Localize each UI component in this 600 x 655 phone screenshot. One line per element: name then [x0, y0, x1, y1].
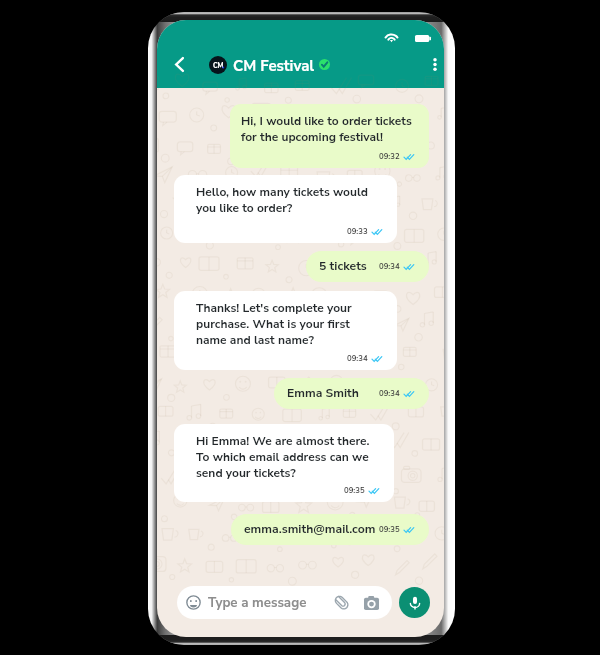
staticText: 09:33 — [347, 226, 368, 237]
button[interactable]: Contact avatar — [209, 56, 227, 74]
staticText: Emma Smith — [287, 385, 359, 402]
staticText: Type a message — [208, 594, 307, 612]
staticText: 09:35 — [379, 524, 400, 535]
staticText: CM — [213, 61, 224, 70]
staticText: CM Festival — [233, 56, 315, 76]
staticText: Hi Emma! We are almost there. To which e… — [196, 433, 370, 481]
button[interactable]: Camera — [361, 593, 381, 613]
staticText: 09:34 — [347, 353, 368, 364]
button[interactable]: 5 tickets — [306, 251, 429, 282]
staticText: 5 tickets — [319, 258, 367, 275]
button[interactable]: Hi, I would like to order tickets for th… — [230, 104, 429, 168]
button[interactable]: More options — [422, 51, 444, 77]
staticText: emma.smith@mail.com — [244, 521, 376, 538]
button[interactable]: Hi Emma! We are almost there. To which e… — [174, 424, 394, 502]
staticText: Hi, I would like to order tickets for th… — [241, 113, 412, 145]
staticText: 09:34 — [379, 261, 400, 272]
button[interactable]: Attach file — [332, 593, 352, 613]
button[interactable]: emma.smith@mail.com — [231, 514, 429, 545]
staticText: 09:32 — [379, 151, 400, 162]
button[interactable]: Voice message — [399, 587, 430, 618]
staticText: 09:35 — [344, 485, 365, 496]
button[interactable]: Thanks! Let's complete your purchase. Wh… — [174, 291, 397, 370]
button[interactable]: Hello, how many tickets would you like t… — [174, 175, 397, 243]
button[interactable]: Back — [167, 52, 192, 77]
staticText: 09:34 — [379, 388, 400, 399]
staticText: Thanks! Let's complete your purchase. Wh… — [196, 300, 352, 348]
button[interactable]: Type a message — [177, 586, 392, 619]
staticText: Hello, how many tickets would you like t… — [196, 184, 368, 216]
button[interactable]: Emma Smith — [274, 378, 429, 409]
